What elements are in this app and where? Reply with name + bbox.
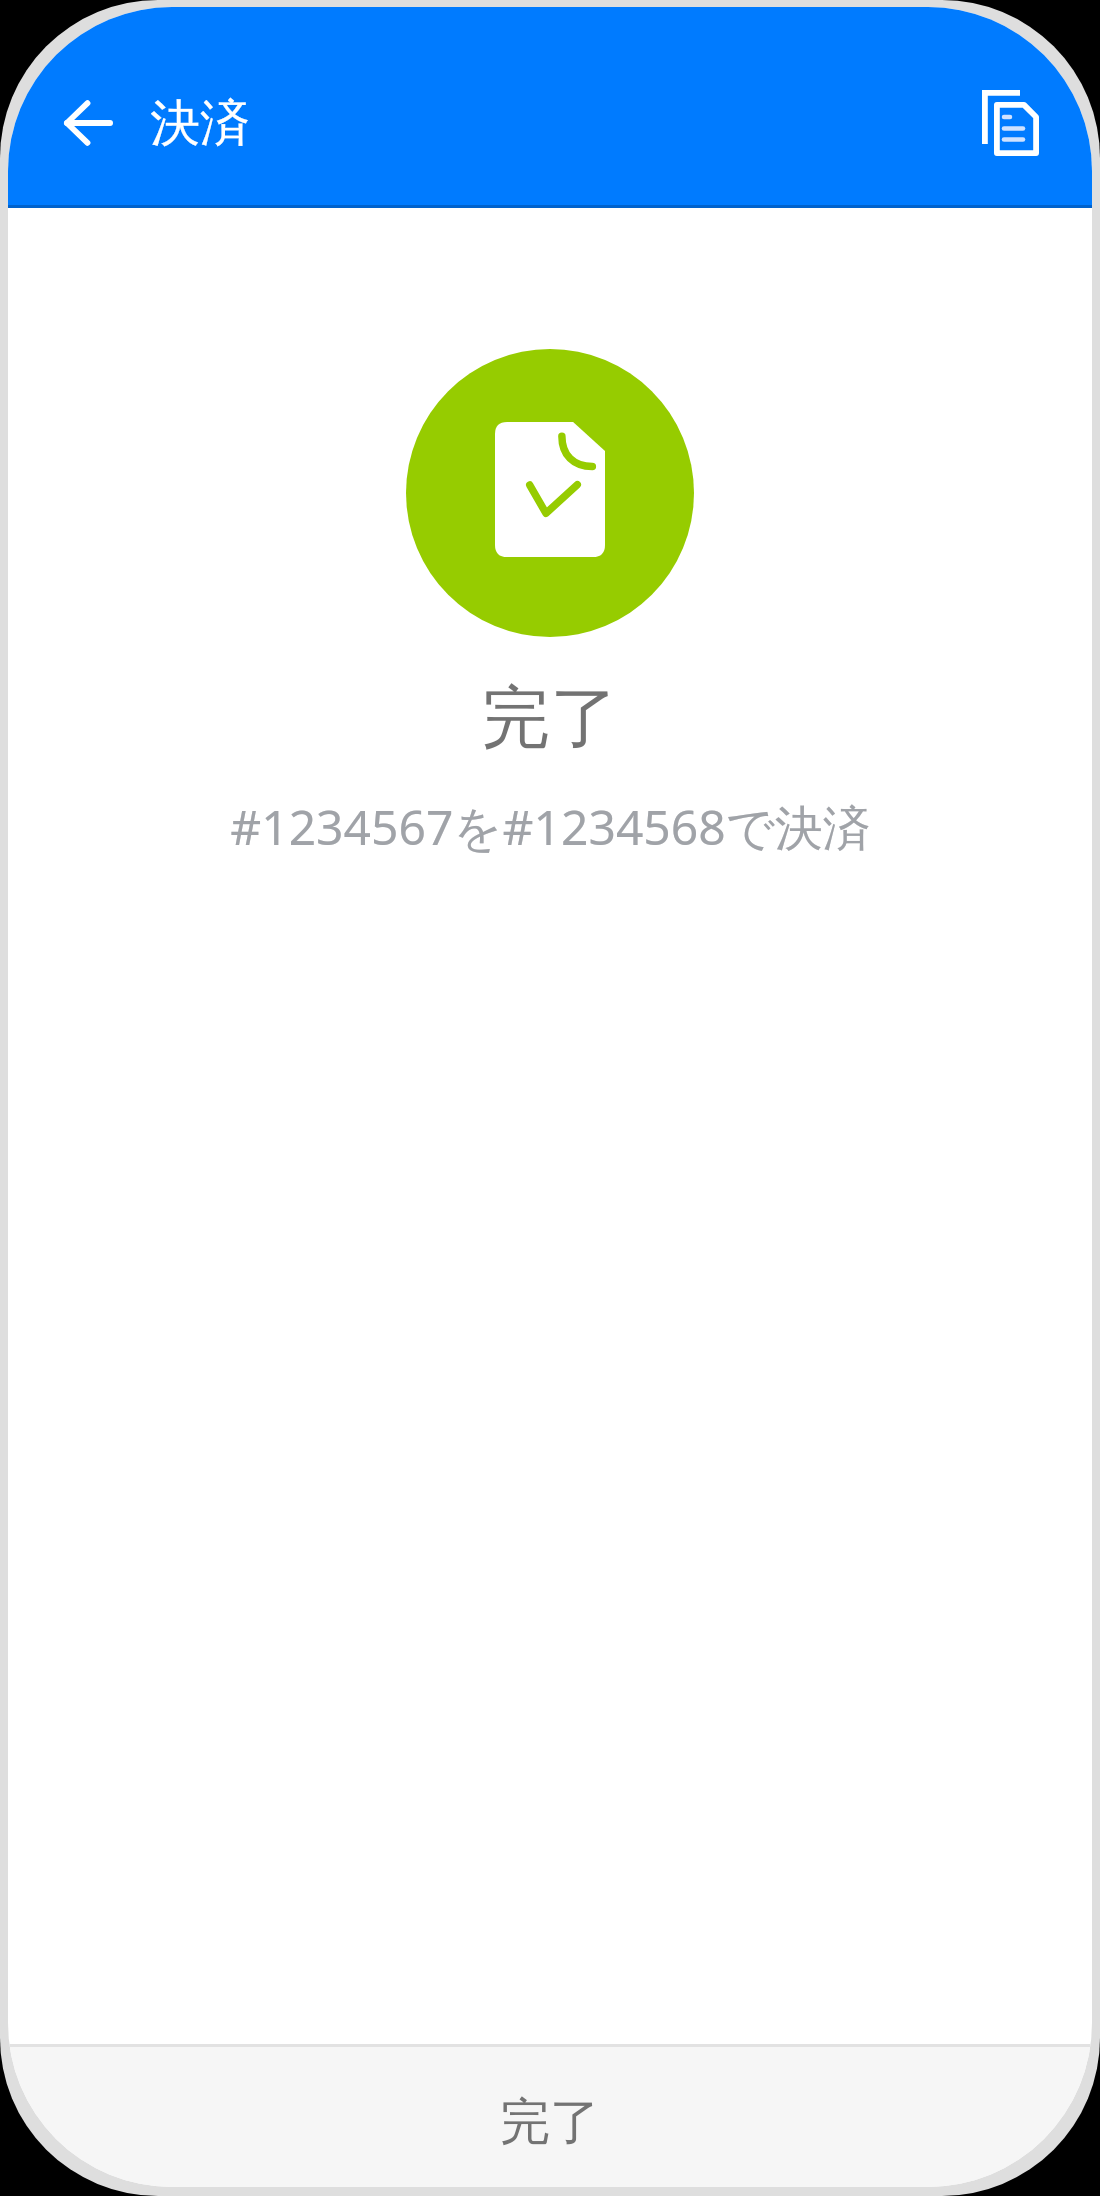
button[interactable]: Copy <box>963 75 1059 171</box>
button[interactable]: 完了 <box>8 2047 1092 2187</box>
staticText: 決済 <box>150 92 250 155</box>
staticText: 完了 <box>482 676 618 762</box>
staticText: 完了 <box>500 2091 600 2154</box>
button[interactable]: Back <box>40 75 136 171</box>
staticText: #1234567を#1234568で決済 <box>230 794 871 860</box>
